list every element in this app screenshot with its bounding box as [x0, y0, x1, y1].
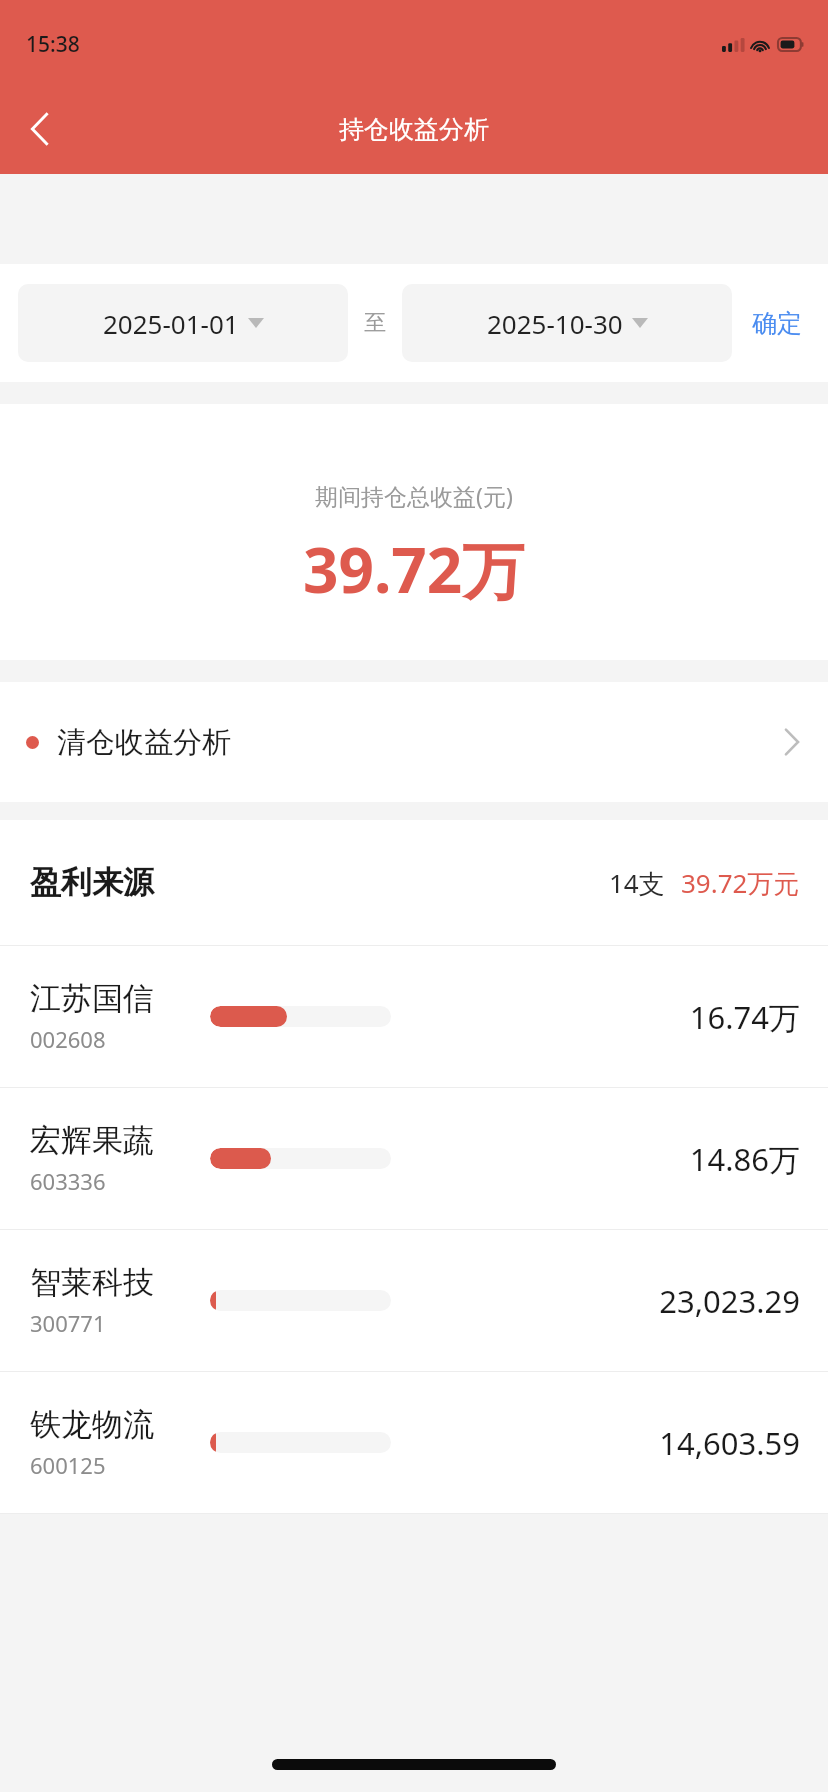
- staticText: 持仓收益分析: [339, 114, 489, 145]
- staticText: 39.72万元: [681, 865, 800, 901]
- staticText: 2025-01-01: [103, 306, 239, 341]
- button[interactable]: 确定: [746, 300, 808, 347]
- staticText: 智莱科技: [30, 1263, 154, 1302]
- button[interactable]: 清仓收益分析: [0, 682, 828, 802]
- staticText: 15:38: [26, 30, 80, 59]
- button[interactable]: 2025-10-30: [402, 284, 732, 362]
- staticText: 清仓收益分析: [57, 724, 231, 761]
- staticText: 期间持仓总收益(元): [315, 480, 513, 511]
- button[interactable]: 江苏国信: [0, 946, 828, 1087]
- staticText: 16.74万: [689, 996, 800, 1038]
- staticText: 14支: [609, 865, 665, 901]
- staticText: 002608: [30, 1024, 106, 1054]
- button[interactable]: 宏辉果蔬: [0, 1088, 828, 1229]
- staticText: 铁龙物流: [30, 1405, 154, 1444]
- staticText: 14,603.59: [659, 1422, 800, 1464]
- button[interactable]: 2025-01-01: [18, 284, 348, 362]
- staticText: 14.86万: [689, 1138, 800, 1180]
- staticText: 2025-10-30: [487, 306, 623, 341]
- staticText: 603336: [30, 1166, 106, 1196]
- staticText: 600125: [30, 1450, 106, 1480]
- staticText: 确定: [752, 308, 802, 339]
- staticText: 宏辉果蔬: [30, 1121, 154, 1160]
- staticText: 23,023.29: [659, 1280, 800, 1322]
- staticText: 39.72万: [303, 527, 525, 612]
- button[interactable]: Back: [10, 100, 68, 158]
- staticText: 300771: [30, 1308, 106, 1338]
- staticText: 盈利来源: [30, 863, 154, 902]
- staticText: 至: [364, 309, 386, 337]
- button[interactable]: 铁龙物流: [0, 1372, 828, 1513]
- staticText: 江苏国信: [30, 979, 154, 1018]
- button[interactable]: 智莱科技: [0, 1230, 828, 1371]
